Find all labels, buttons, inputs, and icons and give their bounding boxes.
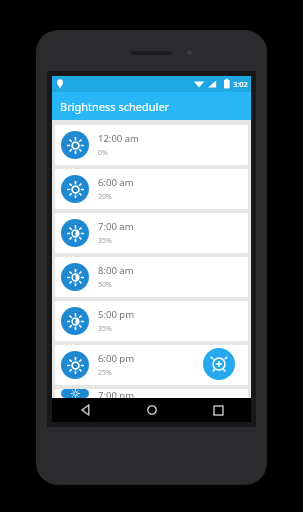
staticText: 0% — [98, 148, 108, 158]
staticText: 5:00 pm — [98, 308, 135, 321]
button[interactable]: Recent apps — [185, 398, 251, 422]
button[interactable]: 5:00 pm — [55, 301, 248, 341]
button[interactable]: 6:00 pm — [55, 345, 248, 385]
staticText: 25% — [98, 368, 112, 378]
staticText: 35% — [98, 324, 112, 334]
staticText: Brightness scheduler — [60, 99, 170, 114]
button[interactable]: 8:00 am — [55, 257, 248, 297]
button[interactable]: Back — [52, 398, 119, 422]
button[interactable]: 12:00 am — [55, 125, 248, 165]
staticText: 35% — [98, 236, 112, 246]
staticText: 20% — [98, 192, 112, 202]
staticText: 7:00 am — [98, 220, 134, 233]
staticText: 8:00 am — [98, 264, 134, 277]
button[interactable]: Home — [119, 398, 185, 422]
staticText: 50% — [98, 280, 112, 290]
button[interactable]: 6:00 am — [55, 169, 248, 209]
button[interactable]: Add alarm — [203, 348, 235, 380]
button[interactable]: 7:00 pm — [55, 389, 248, 398]
staticText: 3:02 — [233, 79, 248, 89]
staticText: 12:00 am — [98, 132, 139, 145]
staticText: 6:00 am — [98, 176, 134, 189]
button[interactable]: 7:00 am — [55, 213, 248, 253]
staticText: 7:00 pm — [98, 389, 135, 398]
staticText: 6:00 pm — [98, 352, 135, 365]
